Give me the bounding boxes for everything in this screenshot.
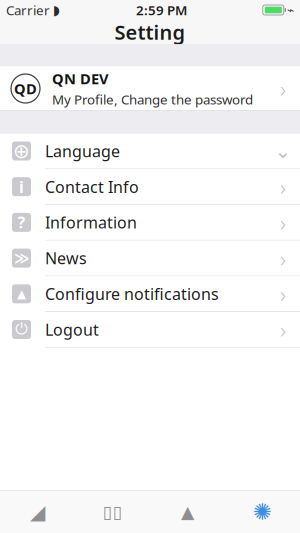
staticText: ›	[280, 279, 286, 309]
staticText: ≫	[14, 250, 29, 266]
button[interactable]: ▲	[0, 276, 300, 312]
staticText: ▯▯	[102, 502, 122, 522]
staticText: ›	[280, 243, 286, 273]
staticText: QN DEV	[52, 69, 109, 88]
button[interactable]: ⏻	[0, 312, 300, 348]
staticText: ›	[280, 172, 286, 202]
staticText: ✺	[253, 499, 272, 525]
button[interactable]: Notifications	[150, 491, 225, 533]
button[interactable]: i	[0, 169, 300, 205]
staticText: Carrier	[6, 1, 50, 19]
staticText: Contact Info	[45, 176, 139, 197]
staticText: ⌁	[287, 3, 294, 17]
staticText: Logout	[45, 319, 99, 340]
staticText: Language	[45, 140, 120, 162]
staticText: News	[45, 247, 87, 269]
staticText: ▲	[17, 287, 26, 301]
staticText: ⊕	[13, 140, 30, 162]
staticText: Setting	[114, 19, 185, 45]
staticText: ⌄	[274, 140, 291, 162]
staticText: ▲	[181, 502, 194, 522]
staticText: ⏻	[15, 322, 28, 337]
staticText: ›	[280, 207, 286, 237]
button[interactable]: Settings	[225, 491, 300, 533]
button[interactable]: Map	[75, 491, 150, 533]
staticText: ◢	[30, 501, 45, 523]
button[interactable]: QD	[0, 66, 300, 110]
staticText: ›	[280, 314, 286, 344]
staticText: 2:59 PM	[136, 1, 187, 19]
staticText: Information	[45, 212, 137, 233]
button[interactable]: ?	[0, 205, 300, 241]
staticText: i	[19, 176, 24, 197]
staticText: ?	[17, 212, 25, 233]
staticText: ◗	[53, 2, 60, 17]
button[interactable]: ≫	[0, 241, 300, 276]
staticText: ›	[280, 73, 286, 103]
staticText: QD	[14, 79, 37, 98]
button[interactable]: Statistics	[0, 491, 75, 533]
staticText: My Profile, Change the password	[52, 90, 253, 108]
button[interactable]: ⊕	[0, 133, 300, 169]
staticText: Configure notifications	[45, 283, 219, 304]
